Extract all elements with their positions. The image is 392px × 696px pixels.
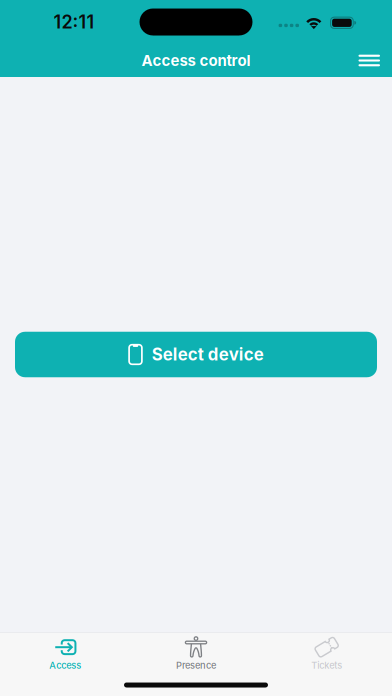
staticText: Presence xyxy=(176,660,216,671)
staticText: 12:11 xyxy=(53,11,94,33)
staticText: Access control xyxy=(141,51,250,70)
button[interactable]: Select device xyxy=(15,332,377,377)
button[interactable]: Tickets xyxy=(261,633,392,673)
staticText: Select device xyxy=(152,344,264,365)
button[interactable]: Access xyxy=(0,633,131,673)
staticText: Access xyxy=(49,660,81,671)
button[interactable]: Menu xyxy=(346,44,392,76)
staticText: Tickets xyxy=(311,660,342,671)
button[interactable]: Presence xyxy=(131,633,261,673)
